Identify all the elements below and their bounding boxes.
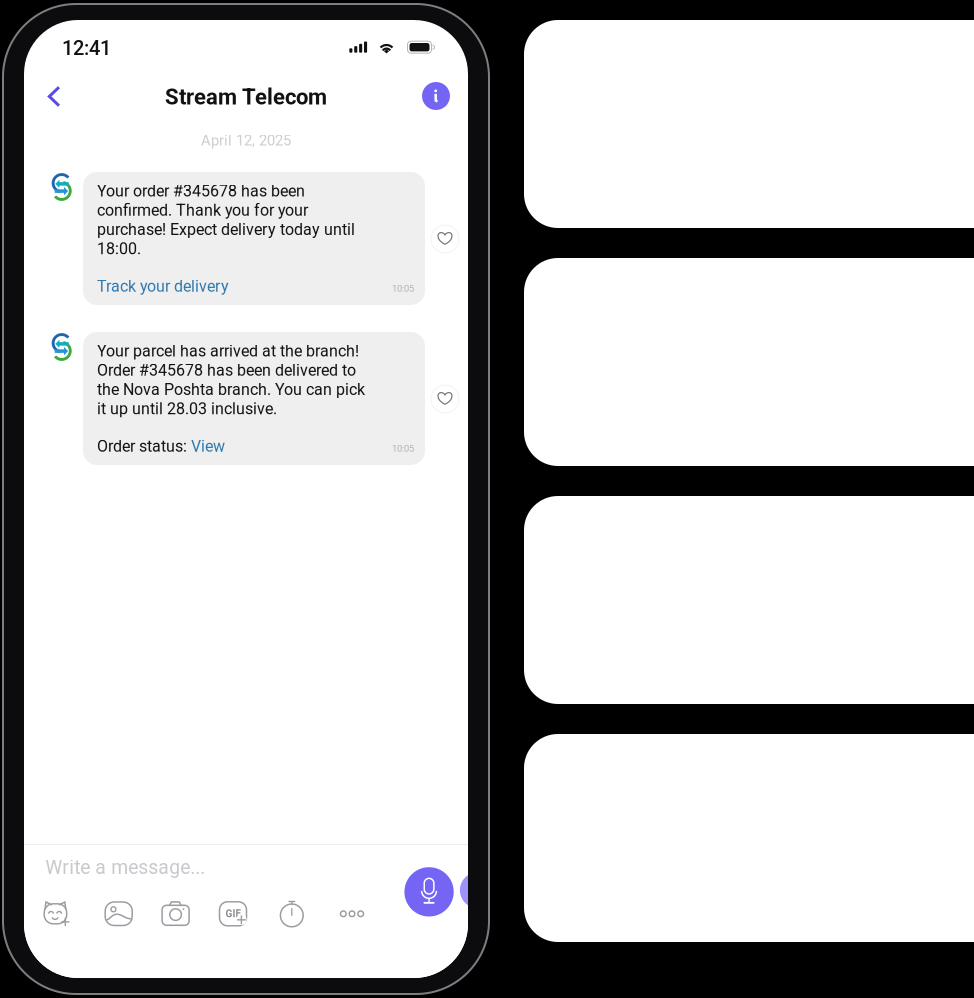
staticText: Order #345678 has been delivered to <box>97 361 356 380</box>
staticText: Stream Telecom <box>165 84 327 110</box>
button[interactable]: Track your delivery <box>97 277 229 296</box>
staticText: Your order #345678 has been <box>97 182 305 200</box>
button[interactable]: GIF <box>219 901 249 927</box>
button[interactable]: Like message <box>431 225 459 253</box>
staticText: April 12, 2025 <box>201 132 291 149</box>
button[interactable]: Conversation info <box>414 74 458 118</box>
button[interactable]: Order status: <box>97 437 225 456</box>
staticText: Order status: <box>97 437 191 456</box>
button[interactable]: More options <box>340 901 366 927</box>
staticText: 10:05 <box>392 283 414 294</box>
staticText: 12:41 <box>62 36 111 60</box>
staticText: confirmed. Thank you for your <box>97 201 308 220</box>
button[interactable]: Disappearing message timer <box>279 901 305 927</box>
staticText: Write a message... <box>45 856 205 879</box>
staticText: GIF <box>225 908 240 920</box>
staticText: the Nova Poshta branch. You can pick <box>97 380 365 399</box>
staticText: it up until 28.03 inclusive. <box>97 399 277 418</box>
staticText: Track your delivery <box>97 277 229 296</box>
button[interactable]: Record voice message <box>404 867 454 916</box>
button[interactable]: Stickers <box>43 901 71 927</box>
button[interactable]: Camera <box>162 901 190 927</box>
button[interactable]: Like message <box>431 385 459 413</box>
staticText: 18:00. <box>97 239 141 258</box>
staticText: Your parcel has arrived at the branch! <box>97 342 359 360</box>
staticText: 10:05 <box>392 443 414 454</box>
staticText: purchase! Expect delivery today until <box>97 220 355 239</box>
button[interactable]: Photo library <box>105 901 133 927</box>
staticText: View <box>191 437 225 456</box>
button[interactable]: Back <box>39 74 83 118</box>
